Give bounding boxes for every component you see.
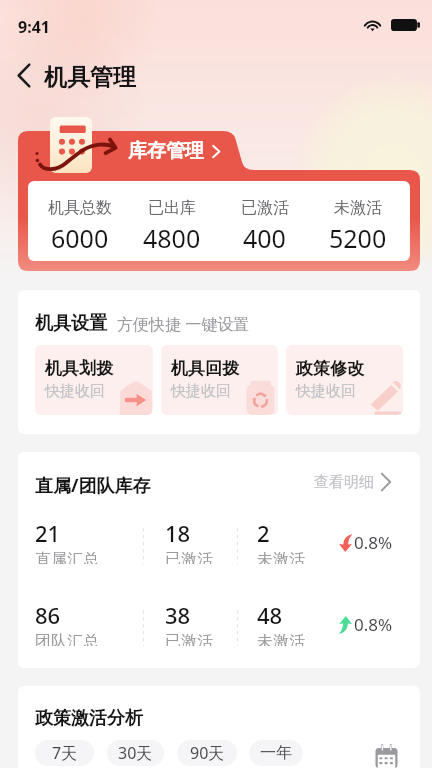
button[interactable]: 政策修改 bbox=[286, 345, 403, 415]
staticText: 直属/团队库存 bbox=[35, 473, 151, 498]
staticText: 机具划拨 bbox=[45, 358, 113, 379]
button[interactable]: 30天 bbox=[107, 740, 164, 766]
staticText: 21 bbox=[35, 518, 61, 548]
button[interactable]: 90天 bbox=[177, 740, 237, 766]
button[interactable]: 7天 bbox=[35, 740, 94, 766]
staticText: 团队汇总 bbox=[35, 632, 99, 646]
staticText: 7天 bbox=[52, 742, 78, 764]
staticText: 5200 bbox=[329, 221, 387, 255]
button[interactable]: 一年 bbox=[249, 740, 303, 766]
staticText: 86 bbox=[35, 600, 61, 630]
staticText: 未激活 bbox=[334, 198, 382, 218]
staticText: 库存管理 bbox=[128, 139, 204, 163]
staticText: 机具回拨 bbox=[171, 358, 239, 379]
staticText: 90天 bbox=[190, 742, 225, 764]
staticText: 快捷收回 bbox=[171, 382, 231, 401]
staticText: 机具总数 bbox=[48, 198, 112, 218]
staticText: 18 bbox=[165, 518, 191, 548]
button[interactable]: 查看明细 bbox=[310, 466, 396, 498]
staticText: 已激活 bbox=[165, 632, 213, 646]
staticText: 38 bbox=[165, 600, 191, 630]
staticText: 2 bbox=[257, 518, 270, 548]
staticText: 快捷收回 bbox=[45, 382, 105, 401]
staticText: 未激活 bbox=[257, 550, 305, 564]
staticText: 0.8% bbox=[354, 531, 393, 554]
staticText: 6000 bbox=[51, 221, 109, 255]
staticText: 直属汇总 bbox=[35, 550, 99, 564]
staticText: 机具管理 bbox=[44, 63, 136, 92]
button[interactable]: 机具划拨 bbox=[35, 345, 153, 415]
button[interactable]: Calendar bbox=[371, 740, 402, 768]
staticText: 30天 bbox=[118, 742, 153, 764]
button[interactable]: 机具回拨 bbox=[161, 345, 278, 415]
staticText: 9:41 bbox=[18, 16, 50, 38]
staticText: 0.8% bbox=[354, 613, 393, 636]
staticText: 一年 bbox=[260, 743, 292, 763]
staticText: 机具设置 bbox=[35, 312, 107, 335]
staticText: 未激活 bbox=[257, 632, 305, 646]
staticText: 4800 bbox=[143, 221, 201, 255]
staticText: 查看明细 bbox=[314, 473, 374, 492]
staticText: 已激活 bbox=[241, 198, 289, 218]
staticText: 快捷收回 bbox=[296, 382, 356, 401]
staticText: 已激活 bbox=[165, 550, 213, 564]
staticText: 政策激活分析 bbox=[35, 707, 143, 730]
staticText: 政策修改 bbox=[296, 358, 364, 379]
button[interactable]: Back bbox=[7, 58, 41, 92]
staticText: 48 bbox=[257, 600, 283, 630]
staticText: 方便快捷 一键设置 bbox=[117, 313, 250, 335]
staticText: 400 bbox=[243, 221, 286, 255]
staticText: 已出库 bbox=[148, 198, 196, 218]
